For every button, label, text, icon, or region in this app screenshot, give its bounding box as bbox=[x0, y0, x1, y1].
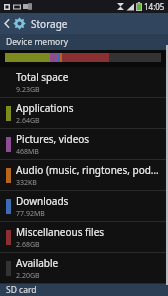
staticText: 14:05 bbox=[144, 1, 165, 12]
staticText: Pictures, videos bbox=[16, 132, 90, 146]
staticText: Applications bbox=[16, 101, 74, 115]
staticText: Total space bbox=[16, 70, 69, 84]
staticText: 2.20GB bbox=[16, 271, 40, 281]
staticText: Downloads bbox=[16, 194, 69, 208]
staticText: 77.92MB bbox=[16, 209, 45, 219]
button[interactable]: Miscellaneous files bbox=[0, 222, 168, 252]
button[interactable]: Applications bbox=[0, 98, 168, 128]
staticText: 9.23GB bbox=[16, 85, 40, 95]
staticText: SD card bbox=[6, 284, 37, 296]
button[interactable]: Downloads bbox=[0, 191, 168, 221]
staticText: 468MB bbox=[16, 147, 39, 157]
staticText: Miscellaneous files bbox=[16, 225, 105, 239]
button[interactable]: Navigate up, Storage bbox=[0, 13, 168, 34]
staticText: 332KB bbox=[16, 178, 37, 188]
staticText: Storage bbox=[31, 17, 68, 31]
button[interactable]: Available bbox=[0, 253, 168, 283]
staticText: Audio (music, ringtones, podca… bbox=[16, 163, 162, 177]
staticText: Available bbox=[16, 256, 59, 270]
staticText: Device memory bbox=[6, 36, 69, 48]
button[interactable]: Total space bbox=[0, 67, 168, 97]
staticText: 2.68GB bbox=[16, 240, 40, 250]
staticText: 2.64GB bbox=[16, 116, 40, 126]
button[interactable]: Audio (music, ringtones, podca… bbox=[0, 160, 168, 190]
button[interactable]: Pictures, videos bbox=[0, 129, 168, 159]
